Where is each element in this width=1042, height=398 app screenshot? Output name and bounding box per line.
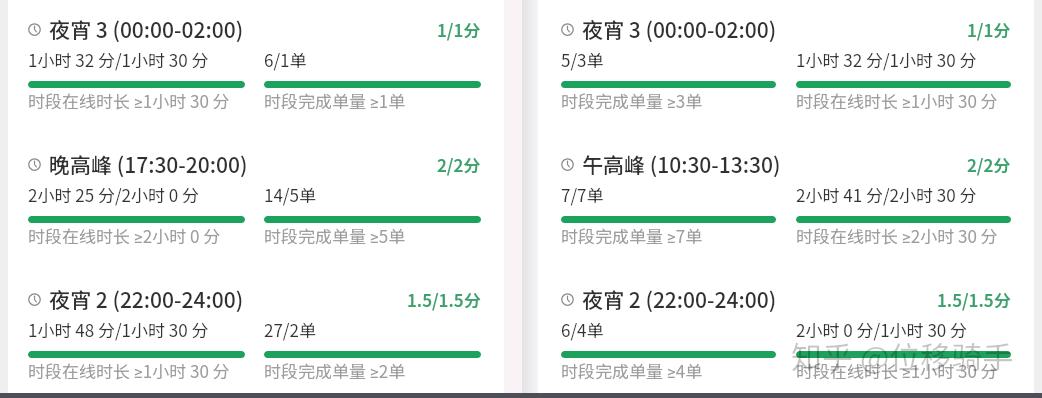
staticText: 6/1单: [264, 47, 307, 72]
other: Time window: [28, 293, 41, 306]
staticText: 知乎 @位移骑手: [791, 333, 1014, 378]
button[interactable]: Time window: [561, 149, 1011, 248]
staticText: 时段在线时长 ≥1小时 30 分: [28, 358, 230, 383]
other: Time window: [561, 158, 574, 171]
staticText: 2/2分: [437, 152, 481, 177]
staticText: 时段在线时长 ≥1小时 30 分: [796, 88, 998, 113]
staticText: 时段在线时长 ≥2小时 30 分: [796, 223, 998, 248]
staticText: 时段在线时长 ≥2小时 0 分: [28, 223, 221, 248]
button[interactable]: Time window: [28, 149, 481, 248]
staticText: 1.5/1.5分: [407, 287, 481, 312]
staticText: 5/3单: [561, 47, 604, 72]
staticText: 时段完成单量 ≥7单: [561, 223, 703, 248]
staticText: 夜宵 3 (00:00-02:00): [49, 14, 244, 44]
button[interactable]: Time window: [28, 14, 481, 113]
button[interactable]: Time window: [561, 14, 1011, 113]
staticText: 2小时 0 分/1小时 30 分: [796, 317, 968, 342]
staticText: 时段完成单量 ≥2单: [264, 358, 406, 383]
staticText: 1/1分: [437, 17, 481, 42]
staticText: 7/7单: [561, 182, 604, 207]
staticText: 时段在线时长 ≥1小时 30 分: [28, 88, 230, 113]
button[interactable]: Time window: [28, 284, 481, 383]
staticText: 14/5单: [264, 182, 316, 207]
staticText: 时段完成单量 ≥1单: [264, 88, 406, 113]
staticText: 1.5/1.5分: [937, 287, 1011, 312]
staticText: 1小时 32 分/1小时 30 分: [796, 47, 977, 72]
other: Time window: [561, 23, 574, 36]
staticText: 2小时 41 分/2小时 30 分: [796, 182, 977, 207]
staticText: 时段在线时长 ≥1小时 30 分: [796, 358, 998, 383]
staticText: 时段完成单量 ≥3单: [561, 88, 703, 113]
staticText: 夜宵 2 (22:00-24:00): [582, 284, 777, 314]
staticText: 午高峰 (10:30-13:30): [582, 149, 781, 179]
staticText: 1小时 48 分/1小时 30 分: [28, 317, 209, 342]
staticText: 晚高峰 (17:30-20:00): [49, 149, 248, 179]
staticText: 1小时 32 分/1小时 30 分: [28, 47, 209, 72]
staticText: 2小时 25 分/2小时 0 分: [28, 182, 200, 207]
other: Time window: [28, 158, 41, 171]
staticText: 1/1分: [967, 17, 1011, 42]
staticText: 6/4单: [561, 317, 604, 342]
staticText: 2/2分: [967, 152, 1011, 177]
other: Time window: [28, 23, 41, 36]
other: Time window: [561, 293, 574, 306]
staticText: 27/2单: [264, 317, 316, 342]
staticText: 夜宵 2 (22:00-24:00): [49, 284, 244, 314]
button[interactable]: Time window: [561, 284, 1011, 383]
staticText: 夜宵 3 (00:00-02:00): [582, 14, 777, 44]
staticText: 时段完成单量 ≥4单: [561, 358, 703, 383]
staticText: 时段完成单量 ≥5单: [264, 223, 406, 248]
